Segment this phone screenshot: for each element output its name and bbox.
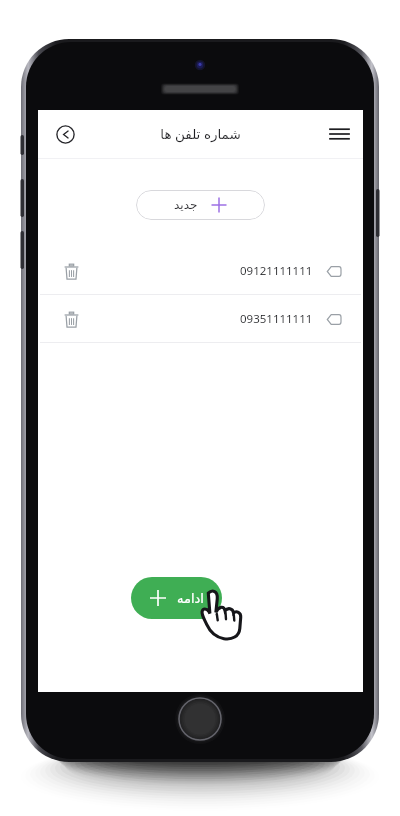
staticText: 09351111111	[240, 311, 313, 327]
staticText: ادامه	[177, 591, 204, 606]
button[interactable]: Menu	[325, 120, 353, 148]
button[interactable]: Back	[52, 121, 78, 147]
button[interactable]: Delete	[58, 258, 84, 284]
staticText: جدید	[174, 198, 198, 212]
staticText: شماره تلفن ها	[160, 125, 241, 143]
button[interactable]: Label	[323, 308, 345, 330]
button[interactable]: جدید	[136, 190, 265, 220]
button[interactable]: ادامه	[131, 577, 222, 619]
button[interactable]: Delete	[58, 306, 84, 332]
button[interactable]: Delete	[38, 247, 363, 295]
button[interactable]: Delete	[38, 295, 363, 343]
button[interactable]: Label	[323, 260, 345, 282]
other: Home	[178, 697, 222, 741]
staticText: 09121111111	[240, 263, 313, 279]
